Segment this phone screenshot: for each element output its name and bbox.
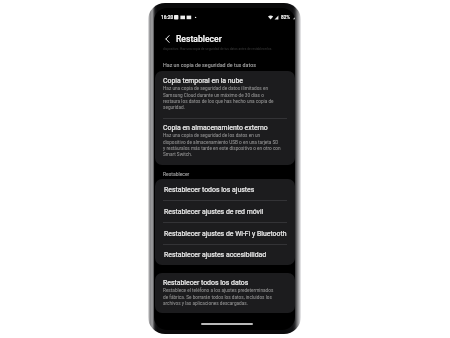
staticText: Copia temporal en la nube [163, 77, 243, 85]
staticText: Restablecer todos los datos [163, 279, 249, 287]
button[interactable]: Restablecer todos los datos [155, 273, 295, 311]
button[interactable]: Back [161, 33, 173, 45]
staticText: dispositivo. Haz una copia de seguridad … [163, 47, 273, 51]
staticText: Restablecer ajustes accesibilidad [164, 251, 267, 259]
staticText: Haz una copia de seguridad de datos ilim… [163, 86, 274, 110]
button[interactable]: Restablecer todos los ajustes [155, 179, 295, 200]
staticText: Restablecer todos los ajustes [164, 186, 255, 194]
staticText: Restablecer [163, 171, 190, 177]
staticText: Haz una copia de seguridad de los datos … [163, 133, 281, 157]
staticText: Restablecer [176, 34, 222, 44]
staticText: Haz un copia de seguridad de tus datos [163, 62, 256, 68]
button[interactable]: Copia temporal en la nube [155, 71, 295, 118]
staticText: Copia en almacenamiento externo [163, 124, 268, 132]
staticText: 16:20 [161, 15, 174, 21]
staticText: Restablecer ajustes de red móvil [164, 208, 264, 216]
button[interactable]: Restablecer ajustes de Wi-Fi y Bluetooth [155, 223, 295, 244]
button[interactable]: Restablecer ajustes de red móvil [155, 201, 295, 222]
staticText: Restablecer ajustes de Wi-Fi y Bluetooth [164, 230, 287, 238]
staticText: Restablece el teléfono a los ajustes pre… [163, 288, 274, 306]
button[interactable]: Copia en almacenamiento externo [155, 119, 295, 162]
button[interactable]: Restablecer ajustes accesibilidad [155, 245, 295, 265]
staticText: 82% [281, 15, 290, 21]
